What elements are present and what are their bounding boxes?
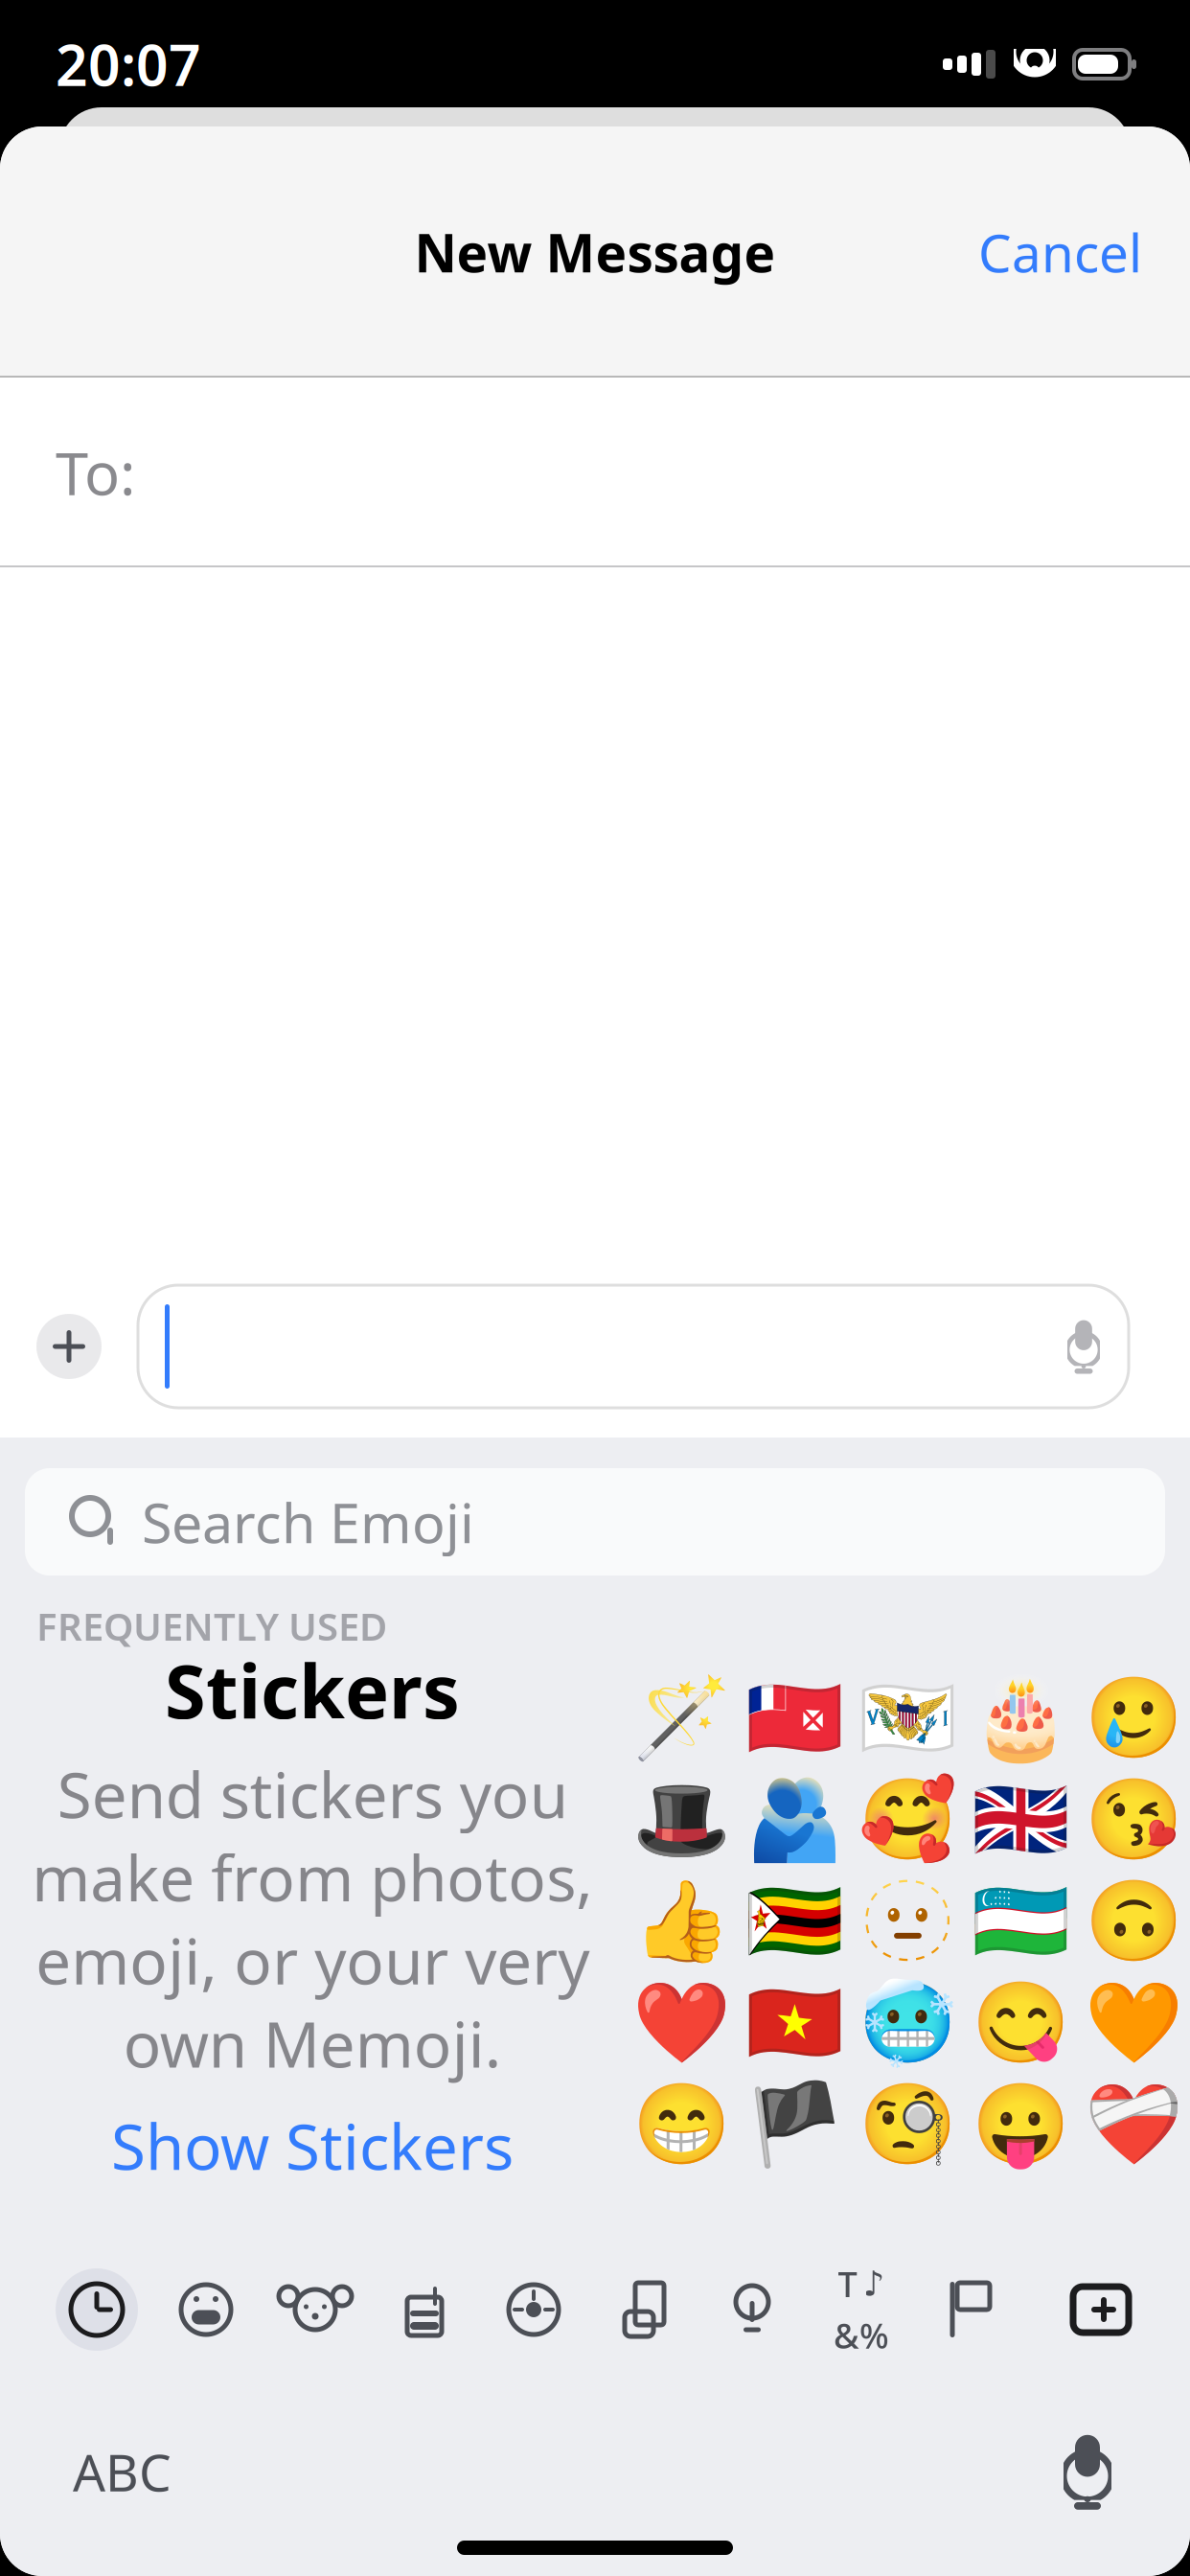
button[interactable]: Add attachment: [36, 1314, 102, 1379]
button[interactable]: Emoji: [851, 1769, 964, 1871]
staticText: 👍: [632, 1876, 731, 1967]
button[interactable]: Emoji: [738, 2074, 851, 2176]
button[interactable]: Animals: [261, 2264, 370, 2356]
staticText: ♪: [863, 2264, 885, 2303]
button[interactable]: Emoji: [1077, 1769, 1190, 1871]
staticText: 😘: [1084, 1775, 1183, 1865]
button[interactable]: Emoji: [1077, 1668, 1190, 1769]
staticText: ❤️: [632, 1978, 731, 2068]
staticText: 🇺🇿: [971, 1876, 1070, 1967]
staticText: 🥲: [1084, 1673, 1183, 1764]
staticText: &%: [834, 2312, 889, 2358]
staticText: 😁: [632, 2079, 731, 2170]
staticText: 🎂: [971, 1673, 1070, 1764]
button[interactable]: Emoji: [625, 1668, 738, 1769]
staticText: 🇻🇮: [858, 1673, 957, 1764]
button[interactable]: Emoji: [625, 1871, 738, 1972]
staticText: FREQUENTLY USED: [36, 1600, 387, 1651]
button[interactable]: Emoji: [1077, 1871, 1190, 1972]
button[interactable]: Emoji: [851, 2074, 964, 2176]
staticText: 🪄: [632, 1673, 731, 1764]
staticText: To:: [56, 433, 135, 511]
staticText: 🇼🇫: [745, 1673, 844, 1764]
staticText: 🇬🇧: [971, 1775, 1070, 1865]
staticText: Cancel: [978, 217, 1142, 287]
staticText: 🥰: [858, 1775, 957, 1865]
staticText: New Message: [414, 217, 776, 287]
button[interactable]: Show Stickers: [92, 2093, 533, 2199]
button[interactable]: Emoji: [738, 1769, 851, 1871]
button[interactable]: Cancel: [953, 200, 1167, 304]
staticText: 🫂: [745, 1775, 844, 1865]
staticText: T: [838, 2261, 857, 2307]
staticText: 🫥: [858, 1876, 957, 1967]
staticText: Search Emoji: [142, 1485, 474, 1558]
button[interactable]: Dictate: [1067, 1312, 1129, 1381]
button[interactable]: Recents: [42, 2264, 151, 2356]
staticText: Send stickers you make from photos, emoj…: [32, 1752, 593, 2085]
staticText: 😋: [971, 1978, 1070, 2068]
staticText: Stickers: [165, 1641, 460, 1739]
button[interactable]: Emoji: [738, 1668, 851, 1769]
button[interactable]: Emoji: [851, 1871, 964, 1972]
button[interactable]: Search Emoji: [25, 1468, 1165, 1575]
button[interactable]: Emoji: [738, 1972, 851, 2074]
button[interactable]: Emoji: [625, 1972, 738, 2074]
button[interactable]: Emoji: [1077, 2074, 1190, 2176]
button[interactable]: Emoji: [851, 1972, 964, 2074]
staticText: 🏴: [745, 2079, 844, 2170]
button[interactable]: Flags: [916, 2264, 1025, 2356]
button[interactable]: Delete: [1042, 2264, 1148, 2356]
button[interactable]: Emoji: [851, 1668, 964, 1769]
button[interactable]: Emoji: [1077, 1972, 1190, 2074]
staticText: Show Stickers: [111, 2104, 514, 2187]
staticText: 🥶: [858, 1978, 957, 2068]
button[interactable]: Smileys: [151, 2264, 261, 2356]
button[interactable]: Activity: [479, 2264, 588, 2356]
button[interactable]: Emoji: [738, 1871, 851, 1972]
staticText: ❤️‍🩹: [1084, 2079, 1183, 2170]
staticText: ABC: [73, 2438, 172, 2505]
button[interactable]: Emoji: [625, 2074, 738, 2176]
button[interactable]: Emoji: [964, 1769, 1077, 1871]
staticText: 🧡: [1084, 1978, 1183, 2068]
button[interactable]: Symbols: [807, 2264, 916, 2356]
button[interactable]: Dictate: [1039, 2423, 1136, 2520]
button[interactable]: Food: [370, 2264, 479, 2356]
staticText: 🎩: [632, 1775, 731, 1865]
staticText: 🇻🇳: [745, 1978, 844, 2068]
button[interactable]: Emoji: [964, 1972, 1077, 2074]
button[interactable]: Emoji: [625, 1769, 738, 1871]
button[interactable]: Emoji: [964, 1668, 1077, 1769]
button[interactable]: ABC: [48, 2417, 196, 2527]
staticText: 😛: [971, 2079, 1070, 2170]
staticText: 🧐: [858, 2079, 957, 2170]
button[interactable]: Emoji: [964, 2074, 1077, 2176]
staticText: 20:07: [56, 27, 201, 101]
button[interactable]: Objects: [698, 2264, 807, 2356]
staticText: 🇿🇼: [745, 1876, 844, 1967]
button[interactable]: Travel: [588, 2264, 698, 2356]
button[interactable]: Emoji: [964, 1871, 1077, 1972]
staticText: 🙃: [1084, 1876, 1183, 1967]
